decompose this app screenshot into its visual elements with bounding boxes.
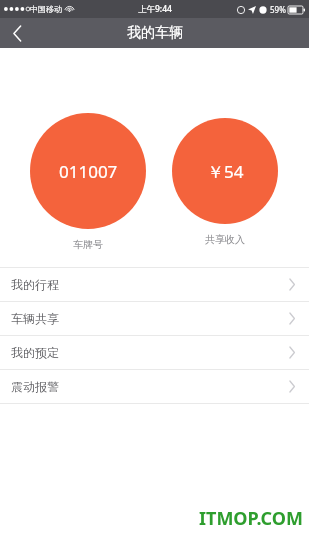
staticText: 车辆共享 <box>11 311 59 326</box>
staticText: 我的预定 <box>11 345 59 360</box>
staticText: 上午9:44 <box>138 3 172 15</box>
staticText: 59% <box>270 4 286 15</box>
button[interactable]: 011007 <box>30 113 146 229</box>
button[interactable]: 车辆共享 <box>0 302 309 335</box>
staticText: 011007 <box>59 160 118 183</box>
staticText: ITMOP.COM <box>199 506 304 531</box>
staticText: 中国移动 <box>30 4 62 14</box>
staticText: ￥54 <box>207 160 244 183</box>
staticText: 震动报警 <box>11 379 59 394</box>
button[interactable]: Back <box>0 18 34 48</box>
staticText: 我的车辆 <box>127 24 183 42</box>
button[interactable]: 我的行程 <box>0 268 309 301</box>
button[interactable]: 我的预定 <box>0 336 309 369</box>
staticText: 共享收入 <box>205 233 245 246</box>
button[interactable]: ￥54 <box>172 118 278 224</box>
staticText: 我的行程 <box>11 277 59 292</box>
button[interactable]: 震动报警 <box>0 370 309 403</box>
staticText: 车牌号 <box>73 238 103 251</box>
